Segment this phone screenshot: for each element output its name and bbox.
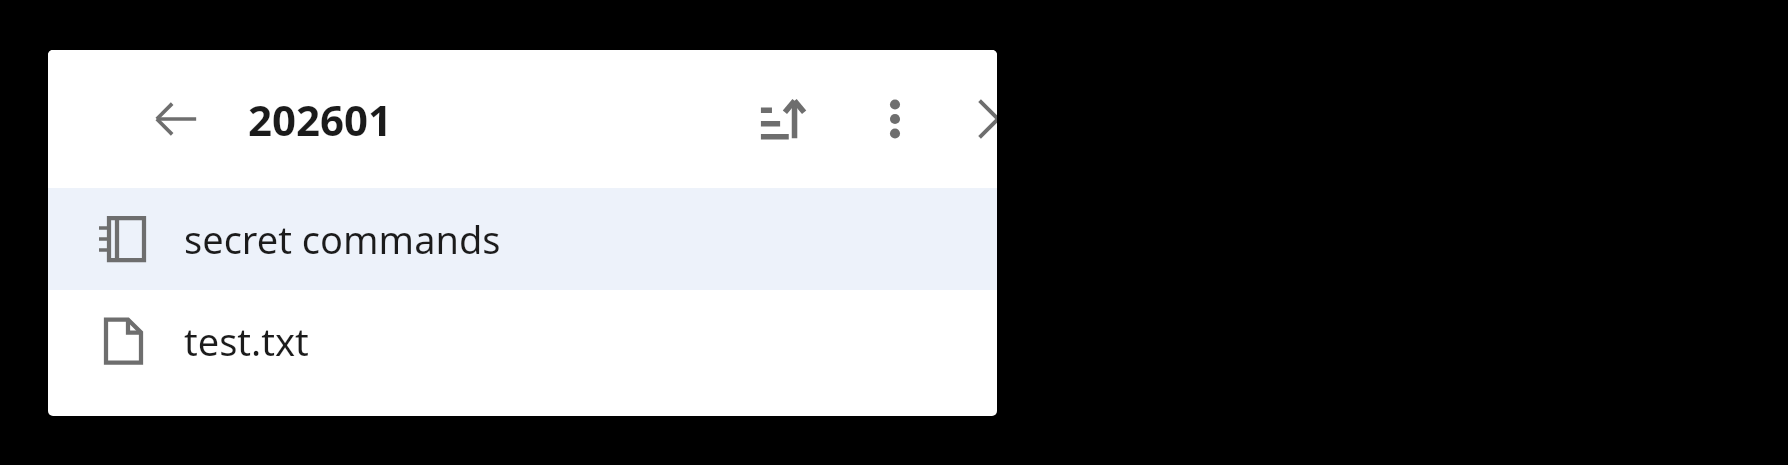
button[interactable]: secret commands (48, 188, 997, 290)
button[interactable]: test.txt (48, 290, 997, 392)
button[interactable]: More options (860, 84, 930, 154)
staticText: secret commands (184, 213, 501, 265)
button[interactable]: Close (963, 84, 997, 154)
button[interactable]: Sort (748, 84, 818, 154)
staticText: 202601 (248, 91, 393, 148)
button[interactable]: Back (142, 85, 210, 153)
staticText: test.txt (184, 315, 309, 367)
